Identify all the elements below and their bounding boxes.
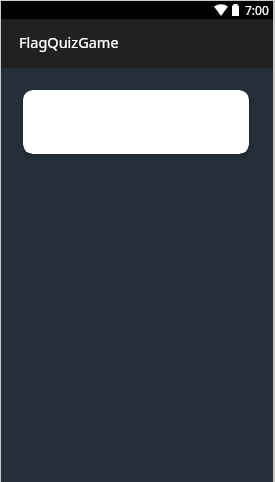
- other: Wi-Fi signal: [214, 4, 228, 16]
- staticText: 7:00: [245, 2, 269, 18]
- staticText: FlagQuizGame: [19, 32, 119, 52]
- other: Battery full: [232, 4, 239, 16]
- button[interactable]: Flag image: [23, 90, 249, 154]
